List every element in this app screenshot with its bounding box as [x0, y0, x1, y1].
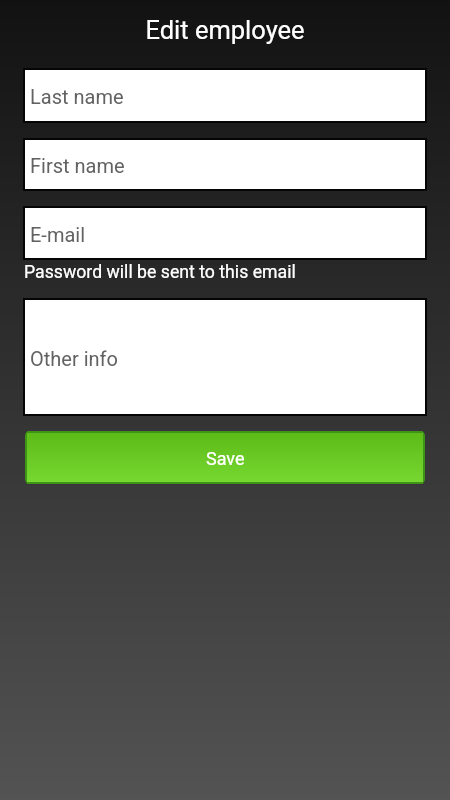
staticText: Other info	[30, 347, 118, 370]
staticText: First name	[30, 154, 125, 177]
button[interactable]: Last name	[23, 68, 427, 123]
button[interactable]: First name	[23, 138, 427, 191]
staticText: E-mail	[30, 223, 86, 246]
staticText: Last name	[30, 85, 124, 108]
button[interactable]: Other info	[23, 298, 427, 416]
staticText: Password will be sent to this email	[24, 262, 296, 283]
staticText: Edit employee	[0, 15, 450, 45]
staticText: Save	[206, 448, 245, 469]
button[interactable]: E-mail	[23, 206, 427, 260]
button[interactable]: Save	[25, 430, 425, 485]
